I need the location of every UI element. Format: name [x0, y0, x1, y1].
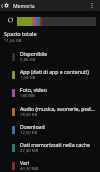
button[interactable]: Disponibile [0, 48, 100, 66]
button[interactable]: Refresh [6, 16, 15, 25]
staticText: Audio (musica, suonerie, pod… [20, 105, 95, 112]
staticText: Foto, video [20, 86, 47, 93]
staticText: Memoria [13, 3, 35, 10]
button[interactable]: App (dati di app e contenuti) [0, 66, 100, 84]
button[interactable]: Audio (musica, suonerie, pod… [0, 103, 100, 121]
staticText: Dati memorizzati nella cache [20, 141, 90, 148]
button[interactable]: Vari [0, 157, 100, 172]
staticText: 180 MB [20, 93, 35, 99]
staticText: Disponibile [20, 50, 48, 57]
staticText: 40,30 MB [20, 166, 39, 172]
button[interactable]: Foto, video [0, 84, 100, 102]
staticText: Vari [20, 159, 30, 166]
staticText: 12,00 KB [20, 130, 38, 136]
button[interactable]: Download [0, 121, 100, 139]
button[interactable]: Dati memorizzati nella cache [0, 139, 100, 157]
staticText: Spazio totale [4, 30, 37, 37]
staticText: 11,64 GB [4, 38, 22, 44]
staticText: 5,86 GB [20, 57, 36, 63]
staticText: 1,04 GB [20, 75, 36, 81]
staticText: App (dati di app e contenuti) [20, 68, 89, 75]
staticText: 78,00 KB [20, 112, 38, 118]
button[interactable]: More options [87, 0, 98, 11]
button[interactable]: Back [0, 0, 11, 11]
staticText: 27,40 MB [20, 148, 39, 154]
staticText: Download [20, 123, 45, 130]
